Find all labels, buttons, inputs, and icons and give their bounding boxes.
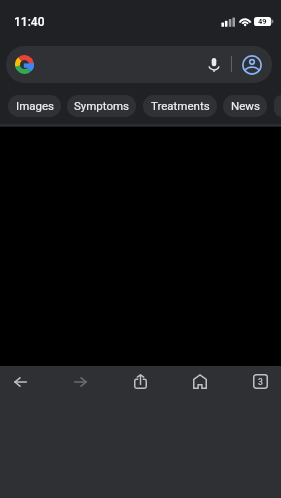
button[interactable]: Voice search	[196, 46, 232, 83]
button[interactable]: Causes	[274, 95, 281, 117]
staticText: 3	[258, 377, 263, 387]
button[interactable]: Search	[6, 46, 272, 83]
staticText: Treatments	[151, 99, 210, 112]
button[interactable]: Share	[120, 366, 160, 397]
staticText: Symptoms	[74, 99, 130, 112]
button[interactable]: Forward	[60, 366, 100, 397]
button[interactable]: Back	[0, 366, 40, 397]
button[interactable]: Treatments	[143, 95, 217, 117]
button[interactable]: Images	[8, 95, 61, 117]
button[interactable]: News	[223, 95, 267, 117]
staticText: Images	[16, 99, 54, 112]
button[interactable]: Home	[180, 366, 220, 397]
button[interactable]: Google account	[235, 46, 269, 83]
button[interactable]: Symptoms	[67, 95, 136, 117]
button[interactable]: Tabs	[240, 366, 280, 397]
staticText: News	[231, 99, 260, 112]
staticText: 11:40	[14, 15, 45, 29]
staticText: 49	[258, 17, 267, 26]
